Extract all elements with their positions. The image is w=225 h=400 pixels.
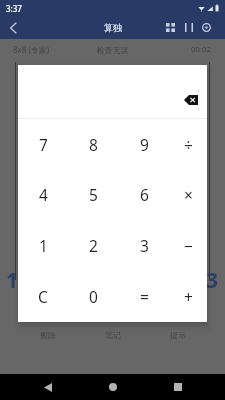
button[interactable]: 9	[119, 119, 170, 169]
staticText: 擦除	[40, 330, 56, 340]
staticText: ×	[184, 184, 193, 205]
staticText: 00:02	[191, 44, 211, 55]
staticText: 3:37	[6, 3, 22, 14]
staticText: =	[140, 286, 149, 307]
button[interactable]: 提示	[145, 326, 210, 344]
button[interactable]: ÷	[170, 119, 207, 169]
staticText: 5	[89, 184, 98, 205]
button[interactable]: 2	[68, 220, 119, 271]
button[interactable]: 0	[68, 271, 119, 322]
staticText: 提示	[170, 330, 186, 340]
staticText: 8	[89, 134, 98, 155]
button[interactable]: Pause	[183, 22, 194, 33]
staticText: 2	[89, 235, 98, 256]
button[interactable]: Recents	[145, 374, 210, 400]
button[interactable]: Backspace	[180, 91, 202, 109]
button[interactable]: −	[170, 220, 207, 271]
button[interactable]: ×	[170, 169, 207, 220]
staticText: 7	[39, 134, 48, 155]
staticText: 3	[206, 266, 219, 295]
button[interactable]: Back	[5, 20, 21, 36]
staticText: ÷	[184, 134, 193, 155]
button[interactable]: =	[119, 271, 170, 322]
staticText: 4	[39, 184, 48, 205]
staticText: 算独	[104, 22, 122, 33]
staticText: 笔记	[105, 330, 121, 340]
staticText: +	[184, 286, 193, 307]
staticText: 1	[39, 235, 48, 256]
staticText: 9	[140, 134, 149, 155]
button[interactable]: 5	[68, 169, 119, 220]
staticText: 3	[140, 235, 149, 256]
button[interactable]: 1	[18, 220, 68, 271]
button[interactable]: 6	[119, 169, 170, 220]
button[interactable]: 擦除	[15, 326, 80, 344]
button[interactable]: 笔记	[80, 326, 145, 344]
button[interactable]: Board	[165, 22, 176, 33]
staticText: 检查无误	[97, 45, 129, 55]
button[interactable]: Home	[80, 374, 145, 400]
button[interactable]: C	[18, 271, 68, 322]
staticText: 6	[140, 184, 149, 205]
button[interactable]: 8	[68, 119, 119, 169]
staticText: 8x8 (专家)	[13, 44, 50, 55]
button[interactable]: Settings	[201, 22, 212, 33]
button[interactable]: +	[170, 271, 207, 322]
staticText: 1	[6, 266, 19, 295]
button[interactable]: 3	[119, 220, 170, 271]
button[interactable]: 4	[18, 169, 68, 220]
staticText: 0	[89, 286, 98, 307]
staticText: −	[184, 235, 193, 256]
button[interactable]: 7	[18, 119, 68, 169]
button[interactable]: Back	[15, 374, 80, 400]
staticText: C	[38, 286, 48, 307]
